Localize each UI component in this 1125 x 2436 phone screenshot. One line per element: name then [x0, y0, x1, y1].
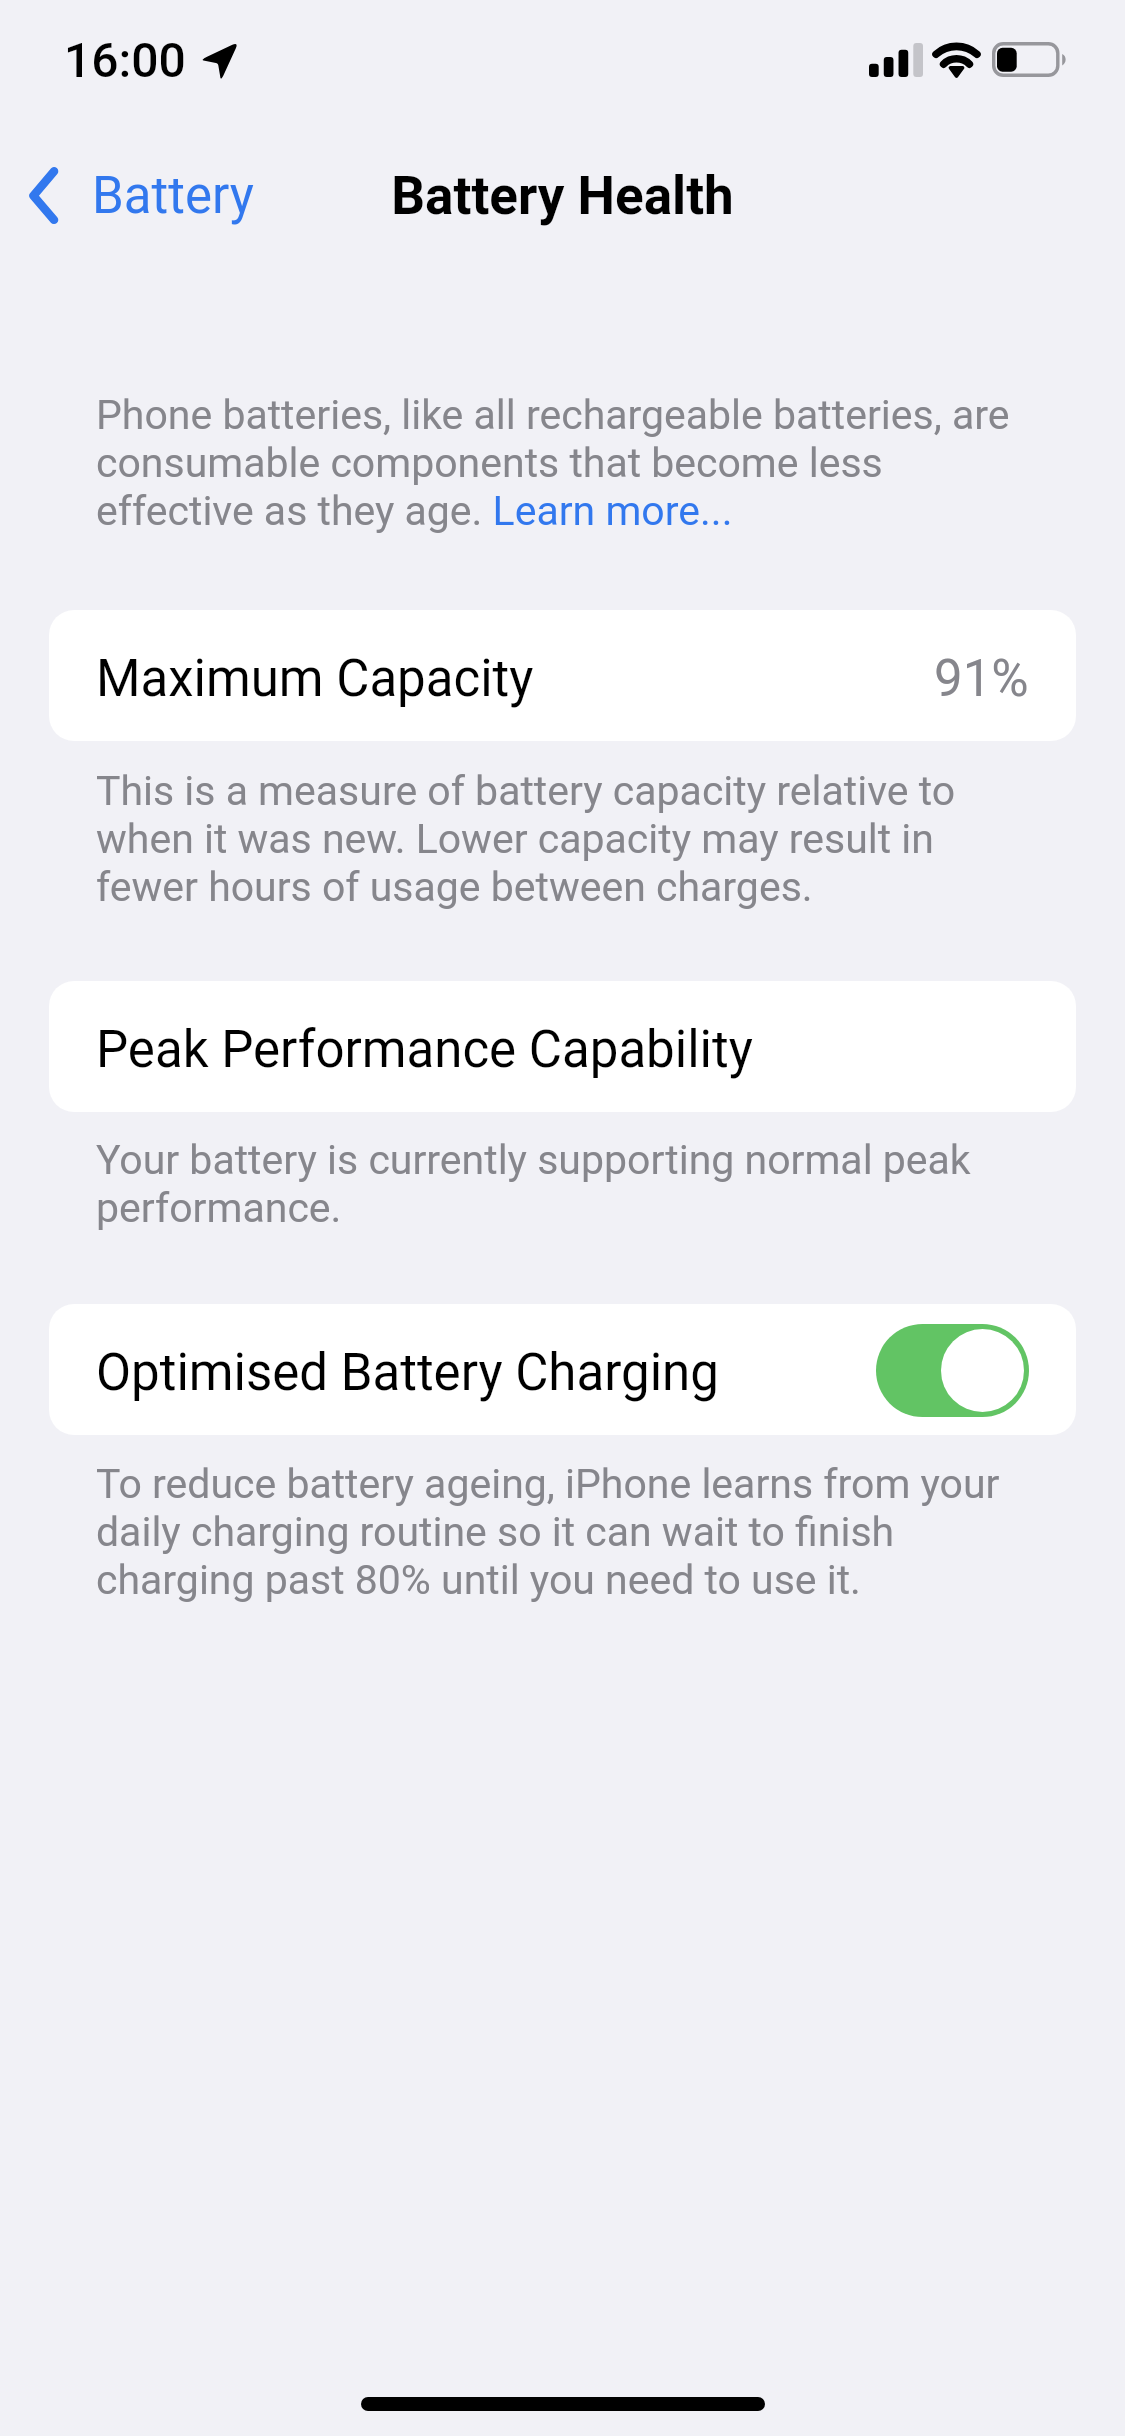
staticText: This is a measure of battery capacity re…: [96, 767, 1029, 911]
staticText: 16:00: [64, 32, 186, 88]
button[interactable]: Learn more about battery health: [494, 487, 734, 537]
button[interactable]: Optimised Battery Charging: [49, 1304, 1076, 1435]
staticText: Your battery is currently supporting nor…: [96, 1136, 1029, 1232]
staticText: Optimised Battery Charging: [96, 1343, 719, 1403]
button[interactable]: Peak Performance Capability: [49, 981, 1076, 1112]
other: Battery level: [992, 42, 1066, 77]
button[interactable]: Battery: [15, 158, 270, 234]
button[interactable]: Maximum Capacity: [49, 610, 1076, 741]
button[interactable]: Optimised Battery Charging toggle, on: [876, 1324, 1029, 1417]
other: Location services active: [200, 39, 242, 81]
staticText: Phone batteries, like all rechargeable b…: [96, 391, 1029, 535]
other: Wi-Fi connected: [933, 42, 980, 78]
staticText: 91%: [934, 649, 1029, 709]
staticText: Peak Performance Capability: [96, 1020, 753, 1080]
other: Cellular signal: [869, 43, 923, 77]
staticText: To reduce battery ageing, iPhone learns …: [96, 1460, 1029, 1604]
staticText: Maximum Capacity: [96, 649, 534, 709]
staticText: Battery: [92, 166, 254, 226]
staticText: Battery Health: [391, 165, 734, 227]
